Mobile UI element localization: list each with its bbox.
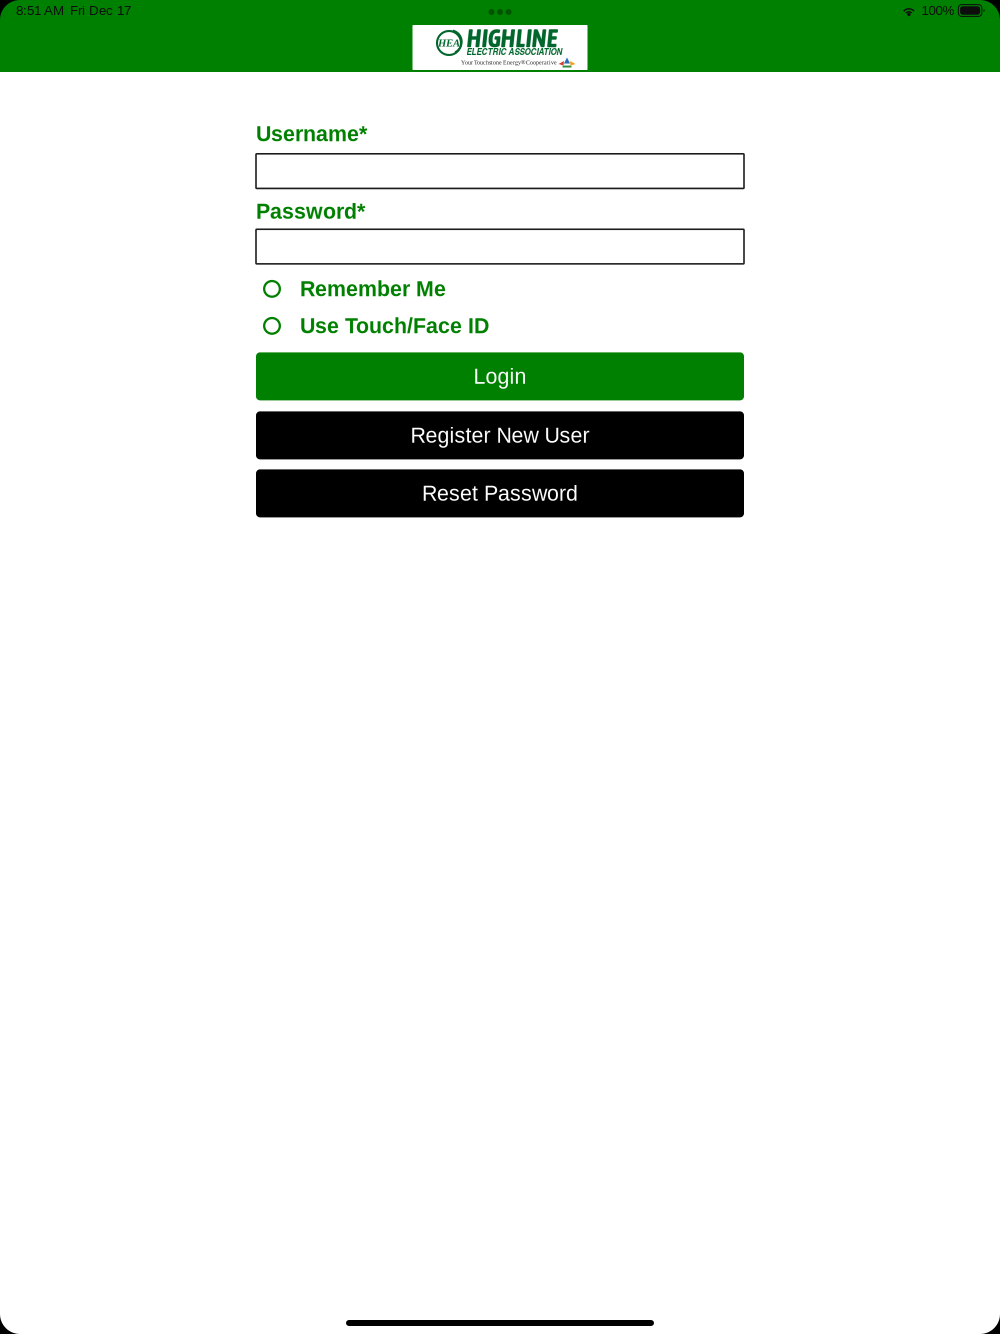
staticText: ELECTRIC ASSOCIATION (466, 44, 562, 58)
staticText: Password* (256, 199, 365, 223)
staticText: Use Touch/Face ID (300, 314, 489, 338)
staticText: Login (473, 364, 526, 388)
staticText: HIGHLINE (466, 23, 557, 52)
button[interactable]: Use Touch/Face ID (256, 307, 744, 344)
staticText: Username* (256, 122, 367, 146)
button[interactable]: Login (256, 352, 744, 400)
button[interactable]: Register New User (256, 411, 744, 459)
button[interactable]: Reset Password (256, 469, 744, 517)
staticText: Remember Me (300, 277, 446, 301)
staticText: 8:51 AM (16, 3, 64, 18)
staticText: Fri Dec 17 (70, 3, 131, 18)
staticText: 100% (921, 3, 954, 18)
staticText: Your Touchstone Energy® Cooperative (461, 59, 557, 66)
staticText: HEA (438, 37, 460, 49)
staticText: Register New User (410, 423, 589, 447)
button[interactable]: Remember Me (256, 270, 744, 307)
staticText: Reset Password (422, 481, 578, 505)
